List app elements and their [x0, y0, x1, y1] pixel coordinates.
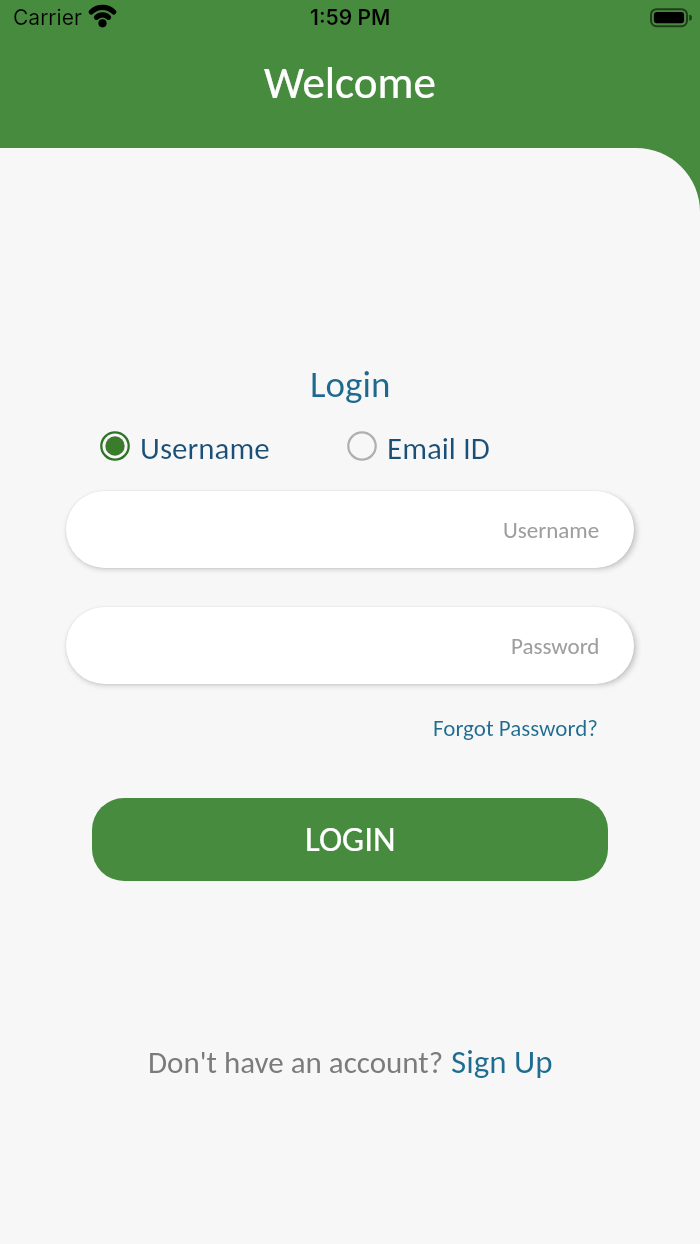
staticText: Login: [310, 362, 391, 407]
button[interactable]: Username: [100, 429, 270, 463]
button[interactable]: Forgot Password?: [433, 714, 598, 742]
button[interactable]: LOGIN: [92, 798, 608, 881]
staticText: Carrier: [13, 5, 82, 30]
staticText: LOGIN: [305, 818, 396, 861]
button[interactable]: Username: [66, 491, 634, 568]
staticText: Welcome: [264, 55, 436, 110]
button[interactable]: Email ID: [347, 429, 490, 463]
staticText: Username: [140, 429, 270, 463]
button[interactable]: Sign Up: [451, 1042, 553, 1082]
staticText: 1:59 PM: [310, 5, 391, 30]
button[interactable]: Password: [66, 607, 634, 684]
staticText: Username: [503, 516, 600, 544]
staticText: Email ID: [387, 429, 490, 463]
staticText: Password: [511, 632, 600, 660]
staticText: Don't have an account?: [148, 1043, 451, 1081]
